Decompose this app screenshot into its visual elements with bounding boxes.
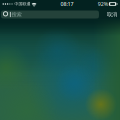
button[interactable]: 取消 [105,10,118,18]
staticText: 08:17 [61,0,74,8]
staticText: 取消 [107,11,117,18]
staticText: 92% [98,0,108,8]
staticText: 中国联通 [14,1,30,6]
staticText: 搜索 [12,11,22,18]
button[interactable]: 搜索 [1,10,99,18]
